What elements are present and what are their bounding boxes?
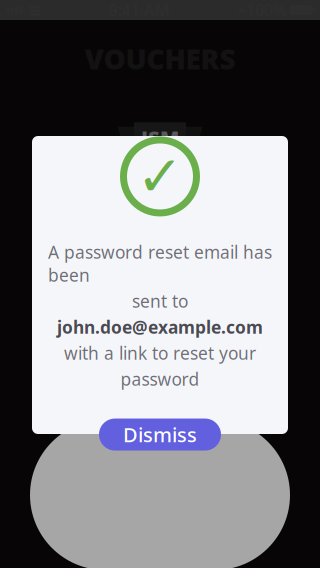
staticText: with a link to reset your [64,341,256,364]
staticText: V [117,85,202,248]
staticText: A password reset email has been [48,240,272,286]
staticText: sent to [132,289,188,312]
staticText: password [120,367,199,390]
staticText: VOUCHERS [84,40,235,77]
staticText: JSM [141,124,179,151]
staticText: john.doe@example.com [57,315,263,338]
staticText: ✓ [136,145,183,208]
staticText: Dismiss [123,421,197,448]
button[interactable]: Dismiss [99,419,221,451]
staticText: 100% [246,0,287,21]
staticText: 9:41 AM [109,0,170,21]
